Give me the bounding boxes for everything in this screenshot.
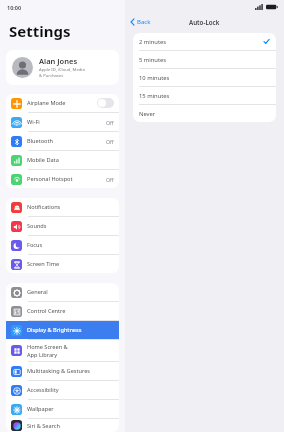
button[interactable]: 2 minutes — [133, 33, 276, 50]
button[interactable]: Alan Jones — [6, 50, 119, 85]
button[interactable]: Sounds — [6, 217, 119, 235]
button[interactable]: 10 minutes — [133, 69, 276, 86]
button[interactable]: Siri & Search — [6, 419, 119, 432]
button[interactable]: Screen Time — [6, 255, 119, 273]
button[interactable]: Wi-Fi — [6, 113, 119, 131]
staticText: Wallpaper — [27, 405, 114, 413]
staticText: Off — [106, 119, 114, 126]
button[interactable]: 15 minutes — [133, 87, 276, 104]
staticText: 2 minutes — [139, 38, 263, 46]
button[interactable]: Multitasking & Gestures — [6, 362, 119, 380]
staticText: Settings — [9, 21, 71, 41]
button[interactable]: Bluetooth — [6, 132, 119, 150]
button[interactable]: Airplane Mode toggle — [97, 98, 114, 108]
staticText: Sounds — [27, 222, 114, 230]
staticText: Multitasking & Gestures — [27, 367, 114, 375]
staticText: 15 minutes — [139, 92, 270, 100]
button[interactable]: 5 minutes — [133, 51, 276, 68]
button[interactable]: Airplane Mode — [6, 94, 119, 112]
button[interactable]: General — [6, 283, 119, 301]
button[interactable]: Personal Hotspot — [6, 170, 119, 188]
button[interactable]: Back — [130, 18, 151, 26]
staticText: Never — [139, 110, 270, 118]
button[interactable]: Never — [133, 105, 276, 122]
staticText: Personal Hotspot — [27, 175, 106, 183]
staticText: Auto-Lock — [189, 18, 220, 26]
staticText: Screen Time — [27, 260, 114, 268]
button[interactable]: Wallpaper — [6, 400, 119, 418]
staticText: Off — [106, 176, 114, 183]
staticText: Wi-Fi — [27, 118, 106, 126]
staticText: Home Screen & App Library — [27, 343, 114, 358]
button[interactable]: Accessibility — [6, 381, 119, 399]
staticText: Notifications — [27, 203, 114, 211]
staticText: Focus — [27, 241, 114, 249]
staticText: Mobile Data — [27, 156, 114, 164]
staticText: Apple ID, iCloud, Media & Purchases — [39, 67, 85, 79]
button[interactable]: Mobile Data — [6, 151, 119, 169]
button[interactable]: Focus — [6, 236, 119, 254]
staticText: Airplane Mode — [27, 99, 97, 107]
staticText: Accessibility — [27, 386, 114, 394]
button[interactable]: Home Screen & App Library — [6, 340, 119, 361]
staticText: 5 minutes — [139, 56, 270, 64]
button[interactable]: Display & Brightness — [6, 321, 119, 339]
staticText: Siri & Search — [27, 422, 114, 430]
button[interactable]: Notifications — [6, 198, 119, 216]
staticText: General — [27, 288, 114, 296]
staticText: Bluetooth — [27, 137, 106, 145]
button[interactable]: Control Centre — [6, 302, 119, 320]
staticText: Control Centre — [27, 307, 114, 315]
staticText: Display & Brightness — [27, 326, 114, 334]
staticText: Back — [137, 18, 151, 26]
staticText: Off — [106, 138, 114, 145]
staticText: Alan Jones — [39, 56, 78, 66]
staticText: 10:00 — [7, 4, 22, 11]
staticText: 10 minutes — [139, 74, 270, 82]
